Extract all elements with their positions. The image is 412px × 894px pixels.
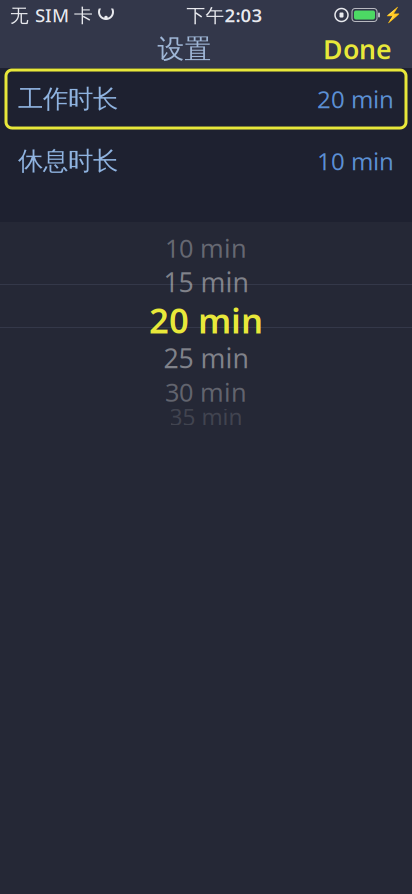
staticText: 下午2:03 xyxy=(186,3,262,27)
button[interactable]: 30 min xyxy=(0,375,412,409)
button[interactable]: 20 min xyxy=(0,299,412,341)
staticText: 10 min xyxy=(165,231,247,265)
staticText: 工作时长 xyxy=(18,83,118,114)
staticText: 无 SIM 卡 xyxy=(10,3,93,27)
button[interactable]: 工作时长 xyxy=(0,68,412,130)
staticText: 休息时长 xyxy=(18,145,118,176)
button[interactable]: Done xyxy=(309,25,406,73)
staticText: 设置 xyxy=(157,33,211,65)
staticText: 20 min xyxy=(317,83,394,115)
staticText: 15 min xyxy=(163,264,248,300)
staticText: 20 min xyxy=(149,297,263,343)
staticText: 35 min xyxy=(169,402,242,432)
button[interactable]: 35 min xyxy=(0,400,412,434)
button[interactable]: 10 min xyxy=(0,231,412,265)
staticText: 25 min xyxy=(163,340,248,376)
staticText: 30 min xyxy=(165,375,247,409)
staticText: ⚡ xyxy=(384,7,402,23)
button[interactable]: 15 min xyxy=(0,265,412,299)
button[interactable]: 25 min xyxy=(0,341,412,375)
staticText: Done xyxy=(323,31,392,67)
staticText: 10 min xyxy=(317,145,394,177)
button[interactable]: 休息时长 xyxy=(0,130,412,192)
